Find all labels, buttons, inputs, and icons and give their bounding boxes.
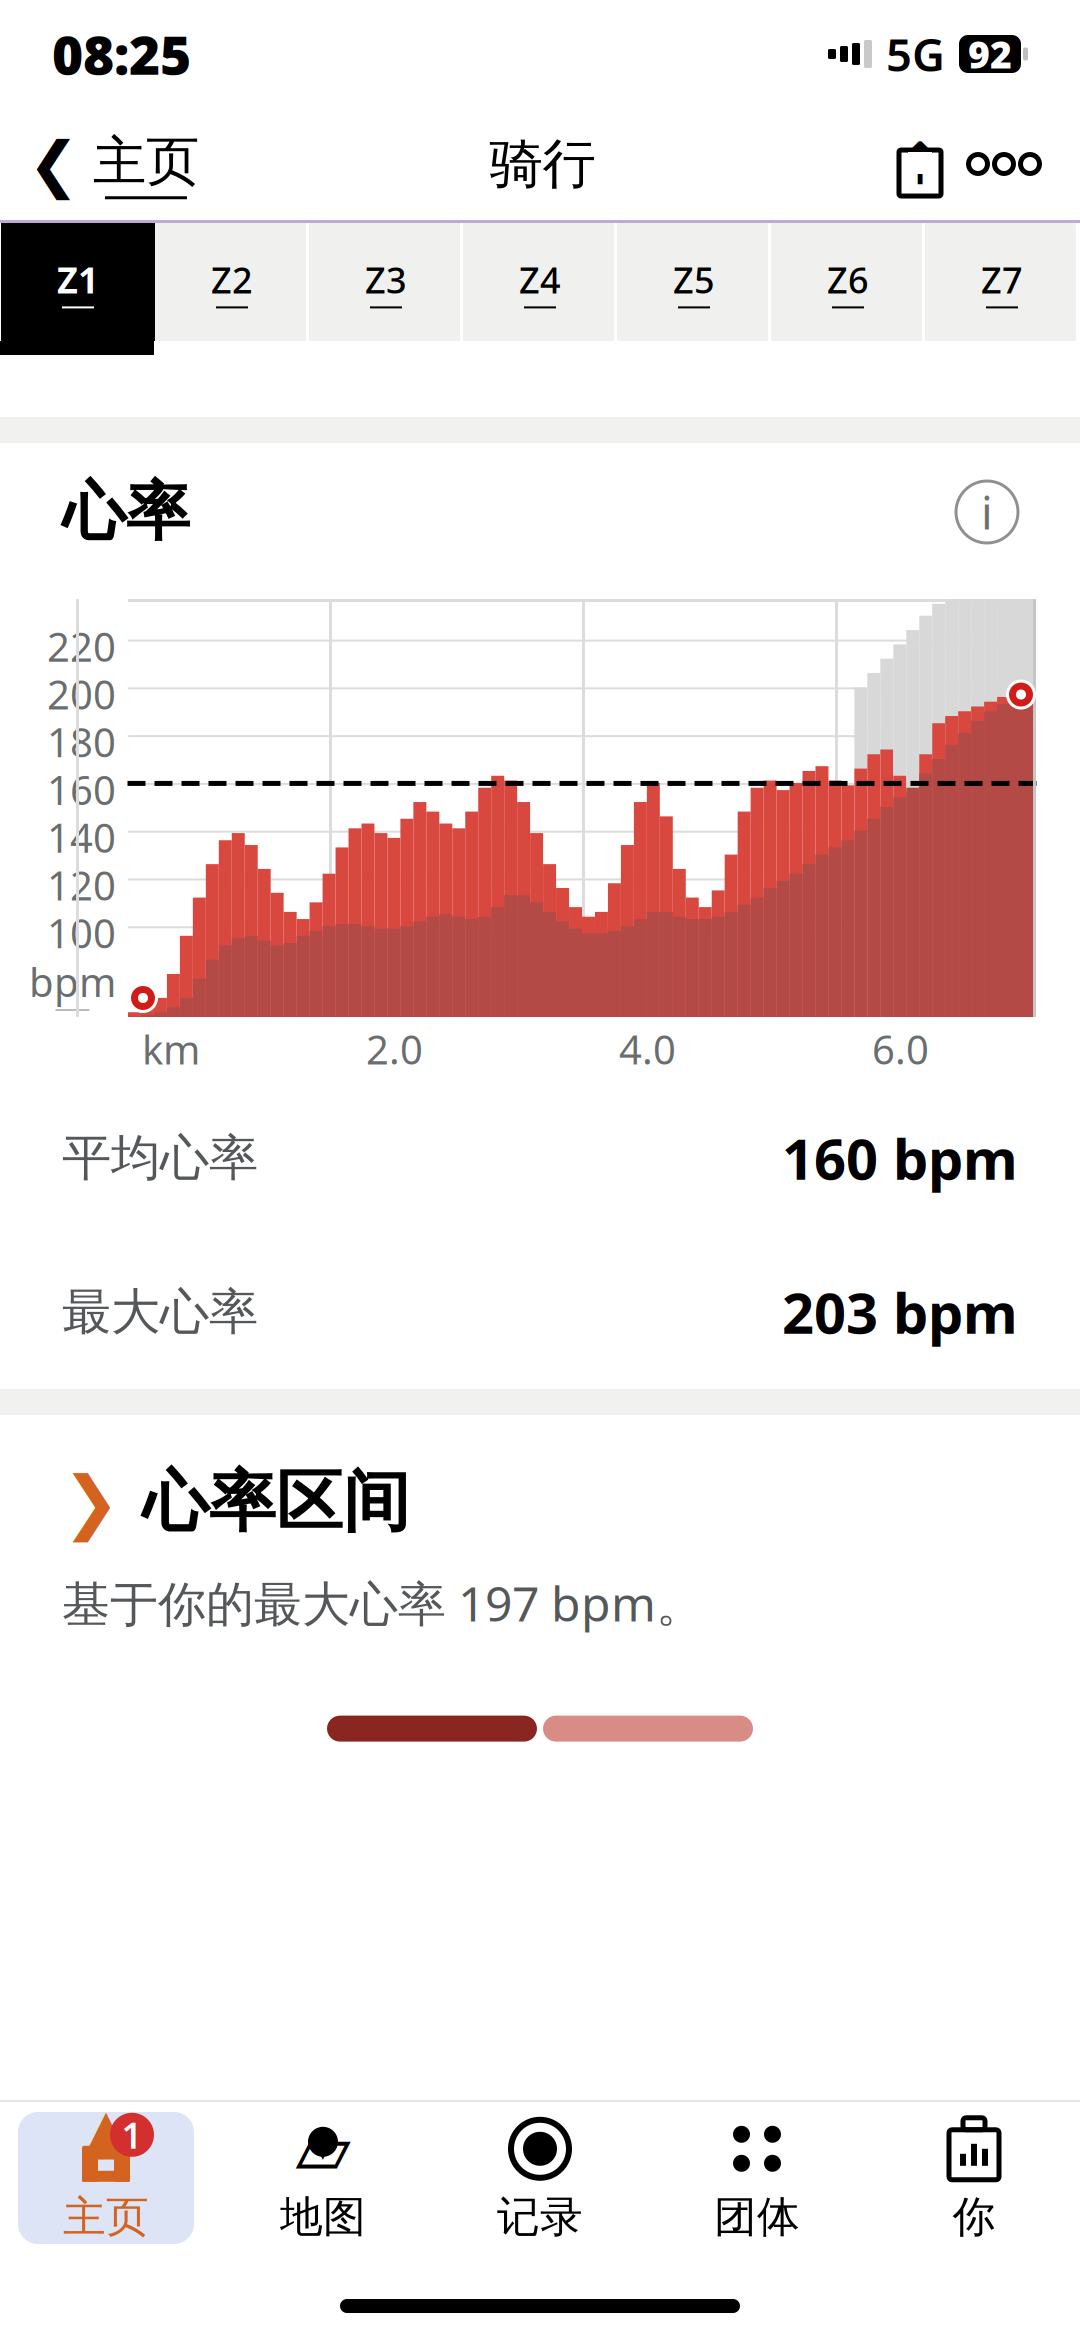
staticText: Z4 bbox=[519, 256, 561, 303]
staticText: 地图 bbox=[280, 2191, 366, 2243]
staticText: 团体 bbox=[714, 2191, 800, 2243]
button[interactable]: Z7 bbox=[925, 223, 1079, 341]
staticText: Z5 bbox=[673, 256, 715, 303]
staticText: Z2 bbox=[211, 256, 253, 303]
staticText: 平均心率 bbox=[62, 1128, 258, 1188]
staticText: 200 bbox=[47, 667, 116, 720]
staticText: 基于你的最大心率 197 bpm。 bbox=[62, 1571, 704, 1635]
staticText: 记录 bbox=[497, 2191, 583, 2243]
staticText: 最大心率 bbox=[62, 1282, 258, 1342]
button[interactable]: Z3 bbox=[309, 223, 463, 341]
staticText: 主页 bbox=[63, 2191, 149, 2243]
staticText: 100 bbox=[47, 906, 116, 959]
staticText: bpm bbox=[29, 955, 116, 1008]
button[interactable]: Z4 bbox=[463, 223, 617, 341]
button[interactable]: 分享 bbox=[886, 119, 954, 209]
button[interactable]: Z1 bbox=[1, 223, 155, 341]
staticText: ❮ bbox=[28, 129, 79, 199]
button[interactable]: 你 bbox=[886, 2112, 1062, 2244]
staticText: Z6 bbox=[827, 256, 869, 303]
staticText: ▱ bbox=[295, 2108, 350, 2190]
staticText: 08:25 bbox=[52, 19, 191, 89]
staticText: 220 bbox=[47, 620, 116, 673]
staticText: 4.0 bbox=[619, 1022, 676, 1075]
staticText: 180 bbox=[47, 715, 116, 768]
staticText: Z7 bbox=[981, 256, 1023, 303]
staticText: 140 bbox=[47, 811, 116, 864]
staticText: 203 bpm bbox=[782, 1275, 1018, 1349]
staticText: 心率 bbox=[62, 473, 190, 551]
staticText: i bbox=[981, 482, 993, 542]
staticText: 92 bbox=[968, 29, 1012, 79]
staticText: 160 bbox=[47, 763, 116, 816]
button[interactable]: 团体 bbox=[669, 2112, 845, 2244]
staticText: 160 bpm bbox=[782, 1121, 1018, 1195]
staticText: 120 bbox=[47, 858, 116, 912]
staticText: 你 bbox=[952, 2191, 995, 2243]
staticText: ▲ bbox=[82, 2096, 129, 2166]
button[interactable]: Z6 bbox=[771, 223, 925, 341]
staticText: 2.0 bbox=[366, 1022, 423, 1075]
button[interactable]: 记录 bbox=[452, 2112, 628, 2244]
staticText: ↑ bbox=[895, 131, 944, 197]
button[interactable]: Z5 bbox=[617, 223, 771, 341]
staticText: km bbox=[142, 1022, 200, 1075]
staticText: 骑行 bbox=[489, 131, 595, 197]
staticText: 主页 bbox=[93, 129, 199, 194]
button[interactable]: Z2 bbox=[155, 223, 309, 341]
staticText: Z1 bbox=[57, 256, 99, 303]
staticText: 心率区间 bbox=[142, 1461, 410, 1543]
button[interactable]: 更多 bbox=[954, 129, 1054, 199]
staticText: 1 bbox=[121, 2111, 142, 2159]
staticText: ❯ bbox=[62, 1463, 120, 1541]
button[interactable]: ▲ bbox=[18, 2112, 194, 2244]
staticText: 6.0 bbox=[872, 1022, 929, 1075]
staticText: 5G bbox=[886, 24, 945, 84]
button[interactable]: 信息 bbox=[956, 481, 1018, 543]
button[interactable]: ❮ bbox=[0, 115, 199, 213]
button[interactable]: ▱ bbox=[235, 2112, 411, 2244]
staticText: ▼ bbox=[311, 2129, 334, 2163]
staticText: Z3 bbox=[365, 256, 407, 303]
